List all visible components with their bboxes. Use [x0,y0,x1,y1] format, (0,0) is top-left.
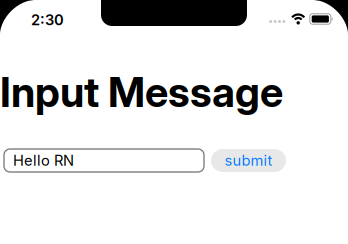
button[interactable]: submit [211,149,286,172]
staticText: Input Message [0,67,283,117]
staticText: submit [224,152,272,169]
staticText: Hello RN [13,152,74,169]
staticText: 2:30 [31,11,64,29]
